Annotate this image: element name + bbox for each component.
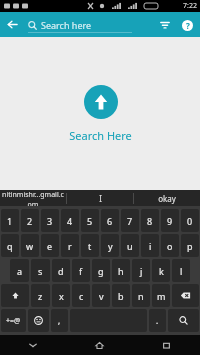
staticText: z (38, 290, 43, 302)
button[interactable]: b (112, 284, 130, 307)
staticText: s (38, 265, 43, 277)
button[interactable]: 3 (41, 209, 59, 232)
staticText: u (127, 240, 133, 252)
staticText: l (180, 265, 183, 277)
button[interactable]: nitinmishr...gmail.com (0, 190, 66, 206)
staticText: nitinmishr...gmail.com (0, 190, 66, 206)
staticText: p (187, 240, 193, 252)
button[interactable]: 6 (101, 209, 119, 232)
staticText: , (58, 315, 61, 326)
staticText: m (157, 290, 166, 302)
button[interactable]: , (51, 309, 68, 332)
button[interactable]: t (81, 234, 99, 257)
button[interactable]: g (92, 259, 110, 282)
button[interactable]: c (72, 284, 90, 307)
button[interactable]: v (92, 284, 110, 307)
button[interactable]: k (152, 259, 170, 282)
staticText: 9 (167, 215, 173, 227)
staticText: b (118, 290, 124, 302)
button[interactable]: n (132, 284, 150, 307)
staticText: 8 (147, 215, 153, 227)
button[interactable]: Home (66, 335, 133, 355)
button[interactable]: Back (0, 335, 66, 355)
staticText: Search Here (69, 128, 132, 143)
button[interactable]: f (72, 259, 90, 282)
button[interactable]: 0 (181, 209, 199, 232)
button[interactable]: 9 (161, 209, 179, 232)
staticText: Search here (41, 19, 92, 31)
staticText: 4 (67, 215, 73, 227)
button[interactable]: q (1, 234, 19, 257)
button[interactable]: Backspace (172, 284, 199, 307)
button[interactable]: Filter (154, 14, 176, 36)
staticText: y (108, 240, 113, 252)
staticText: okay (158, 193, 176, 204)
button[interactable]: l (172, 259, 190, 282)
staticText: o (167, 240, 173, 252)
button[interactable]: . (149, 309, 166, 332)
staticText: j (140, 265, 143, 277)
staticText: . (156, 315, 159, 326)
button[interactable]: j (132, 259, 150, 282)
button[interactable]: w (21, 234, 39, 257)
staticText: r (68, 240, 72, 252)
button[interactable]: z (31, 284, 50, 307)
staticText: 6 (107, 215, 113, 227)
staticText: 1 (7, 215, 13, 227)
button[interactable]: o (161, 234, 179, 257)
button[interactable]: a (10, 259, 29, 282)
staticText: q (7, 240, 13, 252)
button[interactable]: Shift (1, 284, 29, 307)
button[interactable]: I (67, 190, 133, 206)
staticText: 2 (27, 215, 33, 227)
button[interactable]: y (101, 234, 119, 257)
button[interactable]: Back (0, 12, 25, 37)
button[interactable]: 5 (81, 209, 99, 232)
button[interactable]: u (121, 234, 139, 257)
button[interactable]: okay (134, 190, 200, 206)
button[interactable]: Help (176, 14, 198, 36)
staticText: k (159, 265, 164, 277)
staticText: h (118, 265, 124, 277)
staticText: 3 (47, 215, 53, 227)
button[interactable]: 4 (61, 209, 79, 232)
staticText: 7 (127, 215, 133, 227)
staticText: a (17, 265, 23, 277)
button[interactable]: i (141, 234, 159, 257)
button[interactable]: r (61, 234, 79, 257)
staticText: 7:22 (183, 1, 197, 11)
button[interactable]: Search Here (84, 85, 118, 119)
staticText: w (26, 240, 34, 252)
staticText: I (99, 193, 102, 204)
staticText: f (79, 265, 83, 277)
button[interactable]: Recents (133, 335, 200, 355)
staticText: d (58, 265, 64, 277)
staticText: x (59, 290, 64, 302)
button[interactable]: m (152, 284, 170, 307)
button[interactable]: Emoji (28, 309, 49, 332)
button[interactable]: e (41, 234, 59, 257)
staticText: ? (186, 20, 190, 31)
button[interactable]: +=@ (1, 309, 26, 332)
button[interactable]: 7 (121, 209, 139, 232)
button[interactable]: s (31, 259, 50, 282)
staticText: g (98, 265, 104, 277)
button[interactable]: Search (168, 309, 199, 332)
button[interactable]: d (52, 259, 70, 282)
staticText: e (47, 240, 53, 252)
button[interactable]: h (112, 259, 130, 282)
button[interactable]: 8 (141, 209, 159, 232)
staticText: v (99, 290, 104, 302)
button[interactable]: 1 (1, 209, 19, 232)
staticText: 5 (87, 215, 93, 227)
staticText: +=@ (6, 316, 21, 326)
button[interactable]: p (181, 234, 199, 257)
button[interactable]: x (52, 284, 70, 307)
staticText: 0 (187, 215, 193, 227)
staticText: t (88, 240, 92, 252)
staticText: n (138, 290, 144, 302)
staticText: c (79, 290, 84, 302)
button[interactable]: Search here (28, 12, 132, 37)
button[interactable]: 2 (21, 209, 39, 232)
